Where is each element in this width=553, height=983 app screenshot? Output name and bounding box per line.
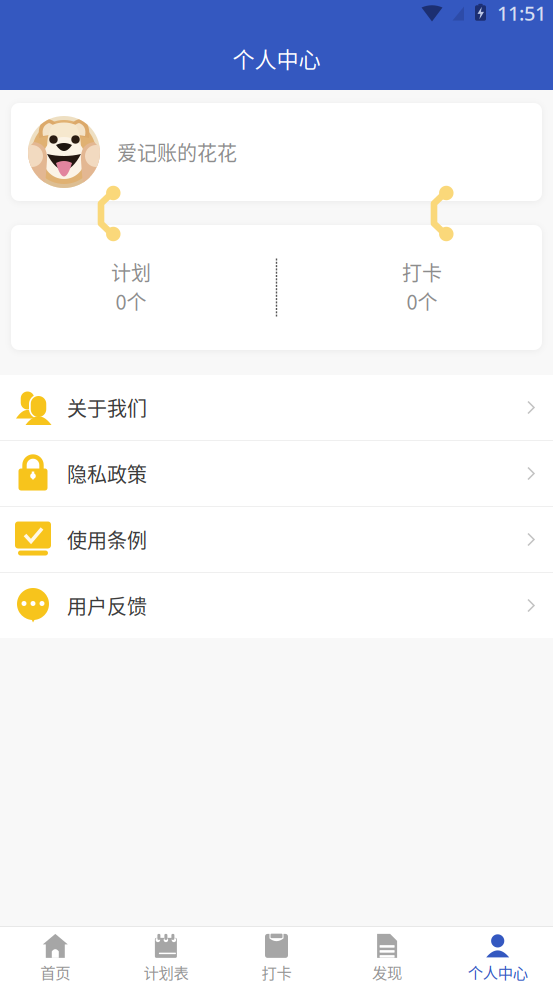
staticText: 11:51 <box>497 0 546 26</box>
staticText: 首页 <box>40 961 70 983</box>
button[interactable]: 发现 <box>332 927 442 983</box>
staticText: 使用条例 <box>67 525 147 554</box>
staticText: 用户反馈 <box>67 591 147 620</box>
staticText: 隐私政策 <box>67 459 147 488</box>
staticText: 个人中心 <box>232 42 320 74</box>
staticText: 打卡 <box>261 961 291 983</box>
staticText: 个人中心 <box>468 961 528 983</box>
button[interactable]: 关于我们 <box>0 375 553 440</box>
staticText: 计划 <box>111 257 151 286</box>
button[interactable]: 计划表 <box>111 927 221 983</box>
staticText: 0个 <box>406 286 437 315</box>
staticText: 发现 <box>372 961 402 983</box>
staticText: 计划表 <box>143 961 188 983</box>
staticText: 0个 <box>115 286 146 315</box>
staticText: 关于我们 <box>67 393 147 422</box>
staticText: 爱记账的花花 <box>117 137 237 166</box>
button[interactable]: 用户反馈 <box>0 573 553 638</box>
button[interactable]: 使用条例 <box>0 507 553 572</box>
button[interactable]: 隐私政策 <box>0 441 553 506</box>
button[interactable]: 个人中心 <box>442 927 553 983</box>
button[interactable]: 首页 <box>0 927 111 983</box>
staticText: 打卡 <box>402 257 442 286</box>
button[interactable]: 打卡 <box>221 927 332 983</box>
